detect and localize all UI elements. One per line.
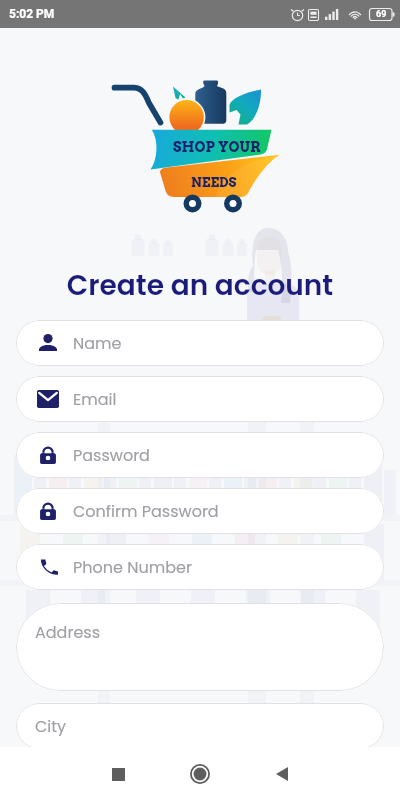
button[interactable]: Password [16, 432, 384, 478]
staticText: Address [35, 621, 101, 643]
staticText: 69 [376, 9, 387, 20]
staticText: City [35, 715, 67, 737]
button[interactable]: Email [16, 376, 384, 422]
staticText: Phone Number [73, 556, 192, 578]
button[interactable]: City [16, 703, 384, 749]
staticText: Email [73, 388, 117, 410]
button[interactable]: Address [16, 603, 384, 691]
staticText: Name [73, 332, 122, 354]
button[interactable]: Recent apps [95, 751, 141, 797]
staticText: Create an account [0, 266, 400, 305]
button[interactable]: Back [259, 751, 305, 797]
staticText: Password [73, 444, 150, 466]
staticText: SHOP YOUR [173, 139, 261, 156]
staticText: NEEDS [191, 175, 237, 191]
button[interactable]: Home [177, 751, 223, 797]
button[interactable]: Confirm Password [16, 488, 384, 534]
button[interactable]: Name [16, 320, 384, 366]
staticText: Confirm Password [73, 500, 219, 522]
button[interactable]: Phone Number [16, 544, 384, 590]
staticText: 5:02 PM [9, 7, 55, 21]
